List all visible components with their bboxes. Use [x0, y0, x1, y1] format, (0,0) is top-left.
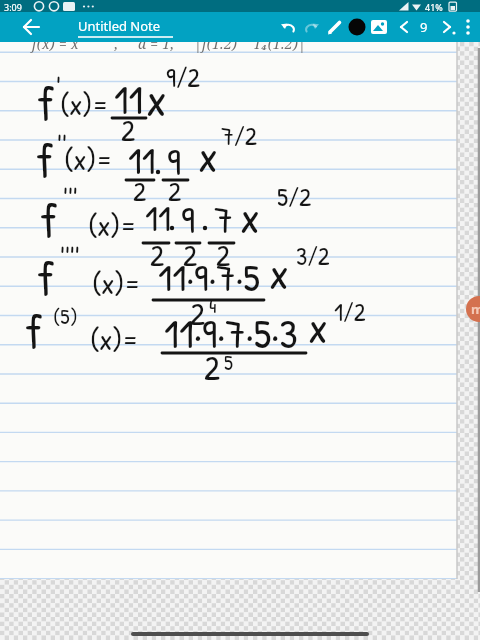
staticText: 11·9·7·5·3 — [164, 305, 298, 361]
staticText: 7 — [214, 193, 233, 244]
staticText: 9/2 — [166, 59, 200, 96]
staticText: ''' — [63, 183, 78, 224]
button[interactable] — [367, 15, 391, 39]
staticText: 7/2 — [221, 118, 258, 153]
button[interactable]: Untitled Note — [78, 14, 178, 40]
staticText: x — [146, 68, 167, 130]
staticText: 5 — [224, 348, 233, 376]
button[interactable] — [435, 15, 459, 39]
staticText: (x)= — [90, 319, 138, 360]
staticText: 9 — [420, 18, 428, 36]
staticText: 1/2 — [334, 295, 366, 329]
staticText: 9 — [181, 193, 195, 244]
button[interactable] — [20, 15, 44, 39]
staticText: x — [198, 126, 218, 186]
staticText: 2 — [121, 110, 136, 151]
staticText: (x)= — [60, 84, 108, 125]
button[interactable]: 9 — [412, 15, 436, 39]
button[interactable] — [276, 15, 300, 39]
staticText: 9 — [167, 135, 181, 186]
staticText: x — [269, 243, 289, 303]
staticText: 5/2 — [277, 179, 312, 214]
staticText: 3:09 — [4, 1, 22, 13]
button[interactable]: m — [466, 296, 480, 322]
staticText: ' — [56, 72, 61, 113]
button[interactable] — [323, 15, 347, 39]
staticText: (x)= — [92, 263, 140, 304]
staticText: 2 — [133, 172, 147, 210]
staticText: 2 — [183, 235, 198, 276]
staticText: 2 — [168, 172, 182, 210]
staticText: (x)= — [64, 139, 112, 180]
staticText: 11 — [145, 193, 172, 242]
button[interactable] — [392, 15, 416, 39]
staticText: f — [25, 299, 43, 364]
staticText: '''' — [60, 242, 80, 283]
staticText: '' — [57, 130, 67, 171]
staticText: (x)= — [88, 205, 136, 246]
staticText: 4 — [209, 292, 217, 319]
staticText: 41% — [425, 1, 443, 13]
staticText: f — [37, 71, 55, 136]
button[interactable] — [300, 15, 324, 39]
staticText: 11 — [128, 134, 156, 185]
staticText: f — [40, 188, 58, 253]
staticText: 2 — [150, 235, 165, 276]
staticText: m — [471, 300, 480, 318]
button[interactable] — [345, 15, 369, 39]
staticText: 2 — [204, 345, 220, 391]
staticText: 3/2 — [296, 239, 330, 273]
staticText: x — [308, 297, 328, 357]
staticText: (5) — [53, 301, 78, 331]
staticText: 11 — [114, 72, 144, 126]
staticText: f — [37, 246, 55, 311]
staticText: f — [36, 128, 54, 193]
staticText: 2 — [216, 235, 231, 276]
staticText: x — [240, 187, 260, 247]
staticText: 11·9·7·5 — [158, 250, 260, 303]
staticText: Untitled Note — [78, 17, 161, 35]
staticText: 2 — [190, 292, 205, 335]
button[interactable] — [456, 15, 480, 39]
staticText: f(x) = x , a = 1, |f(1.2) T₄(1.2)| — [32, 42, 307, 53]
